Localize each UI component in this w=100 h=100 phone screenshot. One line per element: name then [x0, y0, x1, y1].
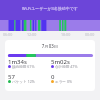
staticText: 18:00 — [61, 32, 71, 37]
staticText: 12:00 — [27, 32, 37, 37]
button[interactable]: 57 — [8, 73, 50, 86]
staticText: 接続時間 61% — [12, 64, 35, 69]
staticText: 0 — [51, 73, 55, 81]
staticText: 合計時間 47% — [55, 64, 78, 69]
staticText: パケット 12% — [12, 79, 35, 84]
button[interactable]: 1m34s — [8, 58, 50, 71]
staticText: 00:00 — [85, 32, 95, 37]
staticText: 5m02s — [51, 58, 70, 66]
staticText: エラー 0% — [55, 79, 72, 84]
staticText: 7月03日 — [5, 43, 95, 49]
staticText: 1m34s — [8, 58, 27, 66]
button[interactable]: 0 — [51, 73, 93, 86]
staticText: 06:00 — [3, 32, 13, 37]
staticText: 57 — [8, 73, 15, 81]
button[interactable]: 5m02s — [51, 58, 93, 71]
staticText: Wi-Fiユーザーが3名接続中です — [22, 6, 78, 11]
button[interactable]: 7月03日 — [5, 40, 95, 91]
